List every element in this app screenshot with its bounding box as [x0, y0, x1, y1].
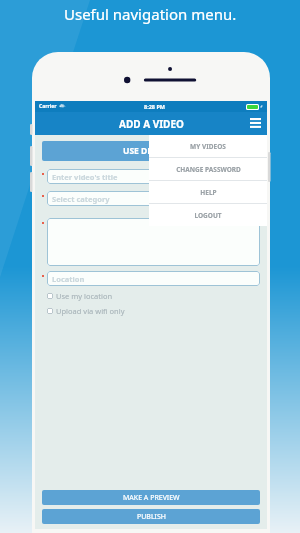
- staticText: HELP: [200, 188, 217, 197]
- button[interactable]: USE DEFAULT: [42, 141, 260, 161]
- staticText: USE DEFAULT: [123, 145, 179, 157]
- button[interactable]: Select category: [47, 191, 260, 206]
- staticText: Enter video's title: [52, 172, 118, 182]
- staticText: Upload via wifi only: [56, 306, 125, 316]
- button[interactable]: Location: [47, 271, 260, 286]
- button[interactable]: Open navigation menu: [243, 112, 267, 135]
- button[interactable]: Upload via wifi only: [42, 305, 260, 317]
- button[interactable]: Use my location: [42, 290, 260, 302]
- button[interactable]: HELP: [149, 181, 267, 203]
- staticText: Use my location: [56, 291, 113, 301]
- staticText: Useful navigation menu.: [64, 4, 237, 24]
- staticText: MY VIDEOS: [190, 142, 226, 151]
- staticText: Select category: [52, 194, 110, 204]
- staticText: ADD A VIDEO: [119, 117, 184, 131]
- button[interactable]: MY VIDEOS: [149, 135, 267, 157]
- staticText: Location: [52, 274, 85, 284]
- button[interactable]: CHANGE PASSWORD: [149, 158, 267, 180]
- staticText: Carrier: [39, 103, 57, 110]
- button[interactable]: MAKE A PREVIEW: [42, 490, 260, 505]
- staticText: ⚡: [260, 104, 263, 109]
- button[interactable]: [47, 218, 260, 266]
- staticText: PUBLISH: [137, 512, 166, 522]
- staticText: CHANGE PASSWORD: [176, 165, 241, 174]
- button[interactable]: Enter video's title: [47, 169, 260, 184]
- staticText: MAKE A PREVIEW: [123, 493, 180, 503]
- staticText: LOGOUT: [194, 211, 222, 220]
- button[interactable]: PUBLISH: [42, 509, 260, 524]
- staticText: 8:28 PM: [144, 103, 166, 110]
- button[interactable]: LOGOUT: [149, 204, 267, 226]
